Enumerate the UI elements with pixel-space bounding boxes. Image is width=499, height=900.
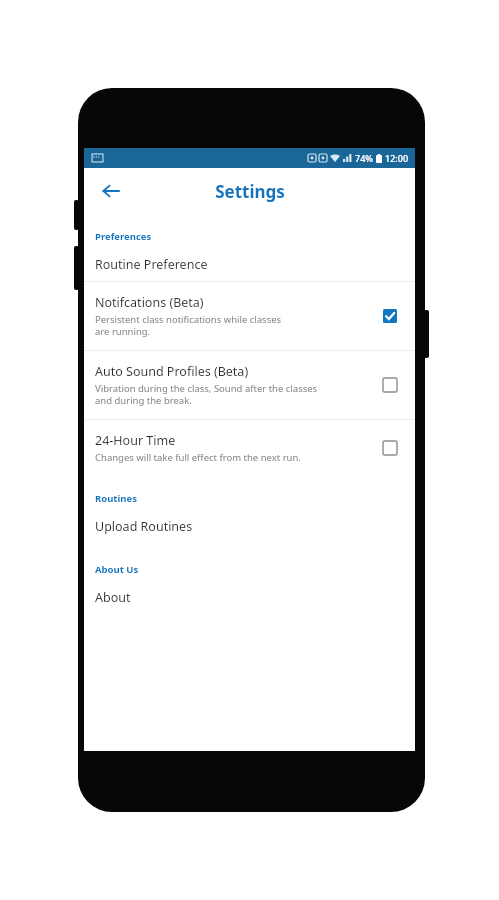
staticText: Routine Preference: [95, 256, 208, 273]
button[interactable]: Notifcations (Beta): [84, 282, 415, 350]
staticText: Persistent class notifications while cla…: [95, 313, 282, 338]
button[interactable]: 24-Hour Time: [84, 420, 415, 476]
staticText: 12:00: [385, 152, 409, 164]
staticText: Upload Routines: [95, 518, 193, 535]
button[interactable]: Unchecked: [379, 374, 401, 396]
staticText: About: [95, 589, 131, 606]
button[interactable]: Back: [92, 172, 130, 210]
staticText: Changes will take full effect from the n…: [95, 451, 301, 464]
staticText: Routines: [95, 492, 415, 505]
button[interactable]: Upload Routines: [84, 509, 415, 543]
staticText: Vibration during the class, Sound after …: [95, 382, 318, 407]
button[interactable]: Routine Preference: [84, 247, 415, 281]
staticText: 24-Hour Time: [95, 432, 176, 449]
button[interactable]: About: [84, 580, 415, 614]
button[interactable]: Unchecked: [379, 437, 401, 459]
button[interactable]: Checked: [379, 305, 401, 327]
staticText: Notifcations (Beta): [95, 294, 204, 311]
staticText: Auto Sound Profiles (Beta): [95, 363, 249, 380]
staticText: 74%: [355, 152, 373, 164]
staticText: Preferences: [95, 230, 415, 243]
button[interactable]: Auto Sound Profiles (Beta): [84, 351, 415, 419]
staticText: About Us: [95, 563, 415, 576]
staticText: Settings: [215, 180, 285, 203]
